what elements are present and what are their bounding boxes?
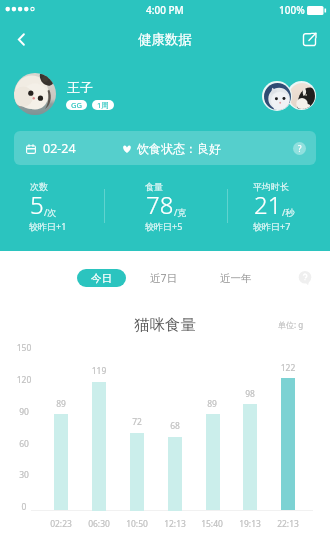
staticText: 30 [12, 469, 36, 481]
staticText: 次数 [30, 181, 48, 192]
button[interactable]: Back [0, 20, 42, 58]
staticText: 60 [12, 438, 36, 450]
button[interactable]: Help [298, 271, 312, 285]
button[interactable]: 近7日 [141, 269, 187, 287]
staticText: 5 [30, 188, 44, 221]
staticText: 0 [12, 501, 36, 513]
staticText: 1周 [97, 100, 109, 110]
staticText: 较昨日+7 [253, 220, 291, 232]
staticText: GG [71, 100, 82, 110]
staticText: 今日 [91, 272, 112, 285]
staticText: 健康数据 [138, 31, 192, 48]
staticText: 4:00 PM [146, 3, 184, 17]
staticText: 较昨日+5 [145, 220, 183, 232]
button[interactable]: Help [293, 142, 306, 155]
staticText: 12:13 [159, 518, 191, 530]
button[interactable]: 今日 [77, 269, 126, 287]
staticText: 02-24 [43, 140, 76, 157]
staticText: 猫咪食量 [0, 315, 330, 335]
staticText: 78 [146, 188, 174, 221]
staticText: 近一年 [220, 272, 252, 285]
staticText: /秒 [282, 206, 295, 218]
staticText: 122 [277, 362, 299, 374]
staticText: 72 [126, 416, 148, 428]
staticText: 89 [201, 398, 223, 410]
staticText: 68 [164, 420, 186, 432]
staticText: /克 [174, 206, 187, 218]
staticText: /次 [44, 206, 57, 218]
staticText: 100% [279, 3, 305, 17]
staticText: 平均时长 [253, 181, 289, 192]
staticText: 119 [88, 365, 110, 377]
staticText: 王子 [67, 79, 93, 95]
staticText: 90 [12, 406, 36, 418]
staticText: 22:13 [272, 518, 304, 530]
staticText: ? [298, 143, 302, 154]
staticText: 15:40 [196, 518, 228, 530]
button[interactable]: Share [288, 20, 330, 58]
staticText: 10:50 [121, 518, 153, 530]
staticText: 150 [12, 342, 36, 354]
staticText: 食量 [145, 181, 163, 192]
staticText: 近7日 [150, 271, 178, 285]
staticText: 单位: g [278, 319, 304, 330]
staticText: 120 [12, 374, 36, 386]
staticText: 98 [239, 388, 261, 400]
button[interactable]: Cat profile [287, 81, 316, 110]
staticText: 饮食状态：良好 [137, 141, 221, 156]
staticText: 02:23 [45, 518, 77, 530]
staticText: 较昨日+1 [29, 220, 67, 232]
staticText: 89 [50, 398, 72, 410]
staticText: 19:13 [234, 518, 266, 530]
button[interactable]: Cat profile [262, 81, 292, 111]
button[interactable]: 近一年 [213, 269, 259, 287]
staticText: 21 [254, 188, 282, 221]
staticText: 06:30 [83, 518, 115, 530]
button[interactable]: 02-24 [14, 131, 316, 165]
